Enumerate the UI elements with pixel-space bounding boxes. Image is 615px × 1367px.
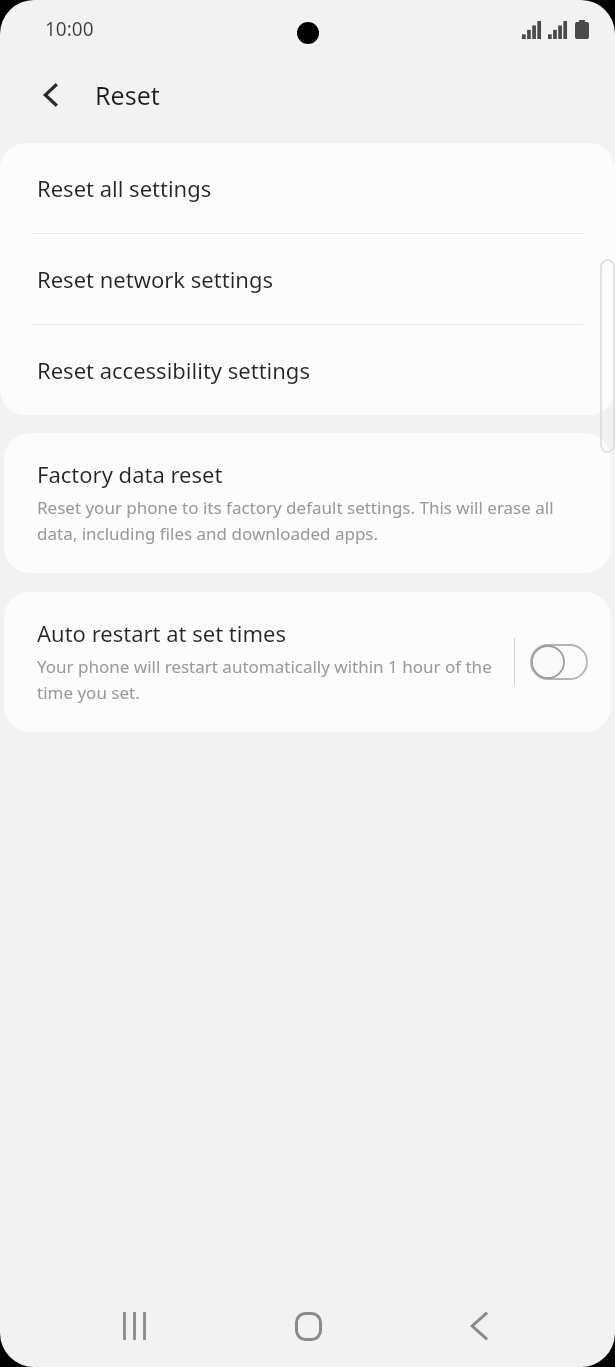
button[interactable]: Auto restart toggle, off	[529, 632, 589, 692]
staticText: Reset your phone to its factory default …	[37, 496, 571, 545]
staticText: Reset all settings	[37, 173, 212, 203]
button[interactable]: Reset network settings	[0, 234, 615, 324]
staticText: 10:00	[45, 16, 94, 42]
button[interactable]: Reset accessibility settings	[0, 325, 615, 415]
staticText: Reset accessibility settings	[37, 355, 310, 385]
staticText: Auto restart at set times	[37, 618, 286, 648]
button[interactable]: Home	[272, 1290, 344, 1362]
button[interactable]: Auto restart at set times	[4, 592, 514, 732]
staticText: Reset network settings	[37, 264, 273, 294]
staticText: Factory data reset	[37, 459, 223, 489]
button[interactable]: Back	[24, 68, 78, 122]
button[interactable]: Back	[443, 1290, 515, 1362]
button[interactable]: Reset all settings	[0, 143, 615, 233]
button[interactable]: Factory data reset	[4, 433, 611, 573]
staticText: Your phone will restart automatically wi…	[37, 655, 502, 704]
button[interactable]: Recent apps	[100, 1290, 172, 1362]
staticText: Reset	[95, 78, 160, 112]
